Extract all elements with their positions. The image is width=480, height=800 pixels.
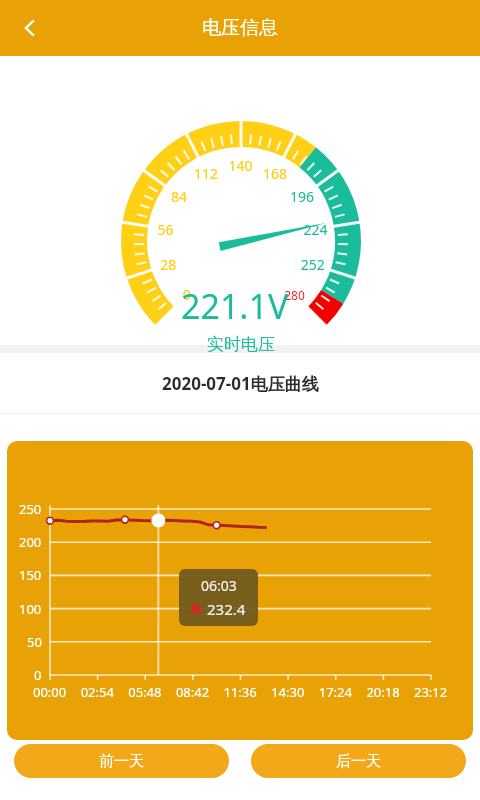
button[interactable]: 后一天 [251,744,466,778]
staticText: 06:03 [201,576,237,595]
staticText: 后一天 [336,752,381,771]
button[interactable]: 前一天 [14,744,229,778]
staticText: 电压信息 [202,16,278,40]
staticText: 2020-07-01电压曲线 [162,372,319,395]
button[interactable]: Back [6,4,54,52]
staticText: 前一天 [99,752,144,771]
button[interactable]: 06:03 [7,441,473,740]
staticText: 232.4 [207,599,246,619]
